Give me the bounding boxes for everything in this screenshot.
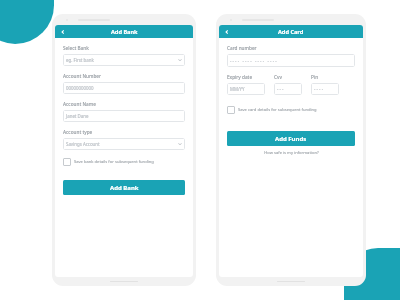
staticText: Janet Dane <box>66 113 89 119</box>
staticText: Add Card <box>278 28 304 36</box>
button[interactable]: Save bank details for subsequent funding <box>63 158 154 166</box>
staticText: Account type <box>63 129 93 135</box>
staticText: Account Name <box>63 101 96 107</box>
button[interactable]: 00000000000 <box>63 82 185 94</box>
button[interactable]: Back <box>58 27 67 36</box>
staticText: Expiry date <box>227 74 253 80</box>
staticText: 00000000000 <box>66 85 94 91</box>
button[interactable]: Add Funds <box>227 131 355 146</box>
staticText: - - - <box>277 86 284 92</box>
staticText: Pin <box>311 74 319 80</box>
staticText: MM/YY <box>230 86 245 92</box>
staticText: Save bank details for subsequent funding <box>74 159 154 165</box>
staticText: Savings Account <box>66 141 100 147</box>
staticText: Cvv <box>274 74 282 80</box>
staticText: - - - - <box>314 86 324 92</box>
staticText: - - - - - - - - - - - - - - - - <box>230 58 277 64</box>
button[interactable]: MM/YY <box>227 83 265 95</box>
button[interactable]: Savings Account <box>63 138 185 150</box>
button[interactable]: - - - - - - - - - - - - - - - - <box>227 54 355 67</box>
staticText: Add Bank <box>111 28 138 36</box>
staticText: Add Funds <box>275 135 307 143</box>
button[interactable]: Save card details for subsequent funding <box>227 106 317 114</box>
staticText: Select Bank <box>63 45 89 51</box>
button[interactable]: Back <box>222 27 231 36</box>
button[interactable]: - - - <box>274 83 302 95</box>
button[interactable]: How safe is my information? <box>264 150 319 156</box>
staticText: eg. First bank <box>66 57 94 63</box>
staticText: Add Bank <box>110 184 139 192</box>
staticText: Card number <box>227 45 257 51</box>
staticText: Account Number <box>63 73 102 79</box>
button[interactable]: eg. First bank <box>63 54 185 66</box>
staticText: Save card details for subsequent funding <box>238 107 317 113</box>
button[interactable]: - - - - <box>311 83 339 95</box>
button[interactable]: Add Bank <box>63 180 185 195</box>
button[interactable]: Janet Dane <box>63 110 185 122</box>
